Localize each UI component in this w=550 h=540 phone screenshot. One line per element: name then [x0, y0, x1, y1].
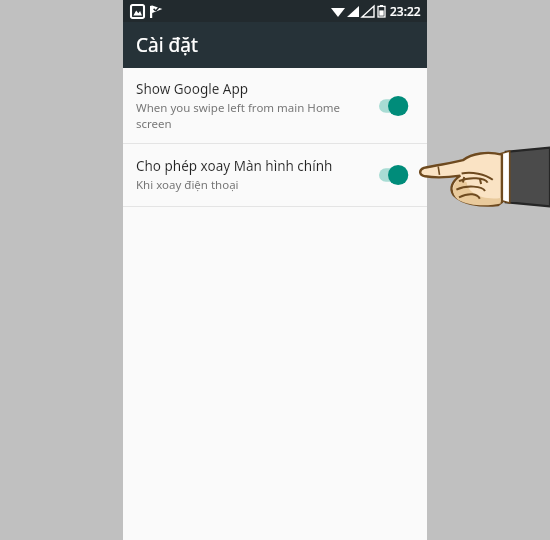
staticText: When you swipe left from main Home scree… [136, 100, 341, 131]
button[interactable]: Toggle setting [379, 95, 413, 117]
staticText: Show Google App [136, 80, 249, 98]
button[interactable]: Cho phép xoay Màn hình chính [123, 144, 427, 206]
staticText: Cài đặt [136, 32, 198, 58]
staticText: Cho phép xoay Màn hình chính [136, 157, 333, 175]
staticText: 23:22 [390, 3, 421, 19]
staticText: Khi xoay điện thoại [136, 177, 239, 193]
button[interactable]: Show Google App [123, 68, 427, 143]
button[interactable]: Toggle setting [379, 164, 413, 186]
